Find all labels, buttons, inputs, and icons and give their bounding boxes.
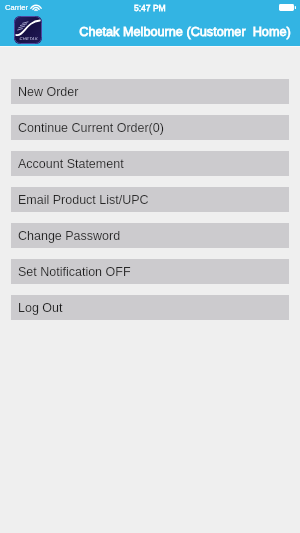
- staticText: Chetak Melbourne (Customer Home): [79, 25, 291, 39]
- other: Battery full: [279, 4, 296, 11]
- staticText: Set Notification OFF: [18, 265, 131, 279]
- staticText: CHETAK: [19, 36, 38, 40]
- staticText: Email Product List/UPC: [18, 193, 149, 207]
- button[interactable]: Change Password: [11, 223, 289, 248]
- button[interactable]: Log Out: [11, 295, 289, 320]
- staticText: 5:47 PM: [134, 3, 166, 12]
- button[interactable]: New Order: [11, 79, 289, 104]
- staticText: Log Out: [18, 301, 63, 315]
- button[interactable]: Email Product List/UPC: [11, 187, 289, 212]
- staticText: New Order: [18, 85, 79, 99]
- button[interactable]: Chetak logo: [14, 16, 42, 44]
- staticText: Change Password: [18, 229, 121, 243]
- staticText: Account Statement: [18, 157, 124, 171]
- button[interactable]: Continue Current Order(0): [11, 115, 289, 140]
- button[interactable]: Set Notification OFF: [11, 259, 289, 284]
- staticText: Carrier: [5, 3, 28, 11]
- staticText: Continue Current Order(0): [18, 121, 164, 135]
- other: Wi-Fi signal: [32, 4, 40, 11]
- button[interactable]: Account Statement: [11, 151, 289, 176]
